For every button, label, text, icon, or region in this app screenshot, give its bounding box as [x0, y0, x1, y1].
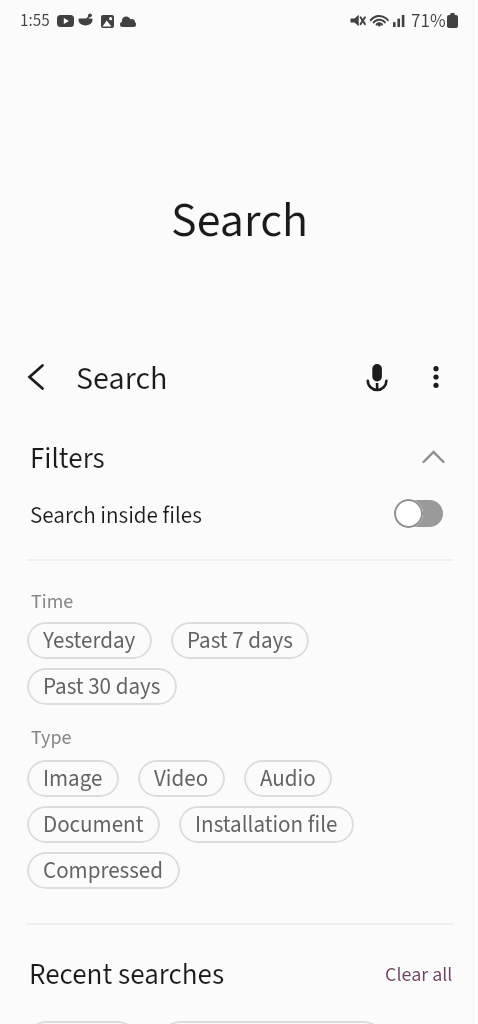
staticText: Type	[31, 724, 72, 752]
staticText: Search inside files	[30, 499, 202, 532]
button[interactable]: Video	[138, 760, 225, 797]
staticText: samsung	[39, 1023, 126, 1024]
staticText: Filters	[30, 438, 105, 479]
staticText: 71%	[411, 8, 446, 35]
staticText: Yesterday	[43, 624, 136, 657]
staticText: Past 30 days	[43, 670, 161, 703]
staticText: Document	[43, 808, 144, 841]
button[interactable]: Yesterday	[27, 622, 152, 659]
button[interactable]: Past 30 days	[27, 668, 177, 705]
button[interactable]: Voice search	[361, 356, 393, 388]
button[interactable]: Filters	[0, 434, 478, 480]
staticText: 1:55	[20, 9, 50, 33]
staticText: Installation file	[195, 808, 338, 841]
button[interactable]: Navigate up	[18, 359, 54, 395]
button[interactable]: More options	[420, 361, 452, 393]
button[interactable]: Search inside files	[394, 499, 443, 528]
staticText: Time	[31, 588, 74, 616]
staticText: Image	[43, 762, 103, 795]
button[interactable]: Image	[27, 760, 119, 797]
button[interactable]: Compressed	[27, 852, 180, 889]
staticText: Recent searches	[29, 954, 225, 995]
staticText: Video	[154, 762, 209, 795]
button[interactable]: Clear all	[385, 961, 453, 989]
button[interactable]: Search inside files	[0, 492, 478, 536]
button[interactable]: Installation file	[179, 806, 354, 843]
button[interactable]: Audio	[244, 760, 332, 797]
staticText: Search	[171, 187, 309, 255]
staticText: Clear all	[385, 961, 453, 989]
button[interactable]: Document	[27, 806, 160, 843]
button[interactable]: samsung	[27, 1021, 137, 1024]
staticText: Compressed	[43, 854, 164, 887]
button[interactable]: Past 7 days	[171, 622, 309, 659]
staticText: Past 7 days	[187, 624, 293, 657]
staticText: Search	[76, 356, 168, 402]
button[interactable]: my documents 2024	[161, 1021, 383, 1024]
staticText: Audio	[260, 762, 316, 795]
